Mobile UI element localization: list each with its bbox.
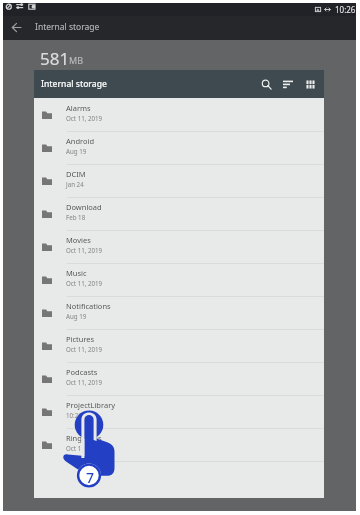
staticText: Oct 11, 2019 bbox=[66, 114, 103, 122]
staticText: Feb 18 bbox=[66, 213, 86, 221]
staticText: 7 bbox=[86, 468, 95, 487]
staticText: Podcasts bbox=[66, 367, 98, 377]
button[interactable]: Pictures bbox=[34, 329, 324, 362]
button[interactable]: Notifications bbox=[34, 296, 324, 329]
staticText: Oct 11, 2019 bbox=[66, 378, 103, 386]
staticText: Internal storage bbox=[35, 21, 100, 33]
staticText: Aug 19 bbox=[66, 147, 87, 155]
button[interactable]: Ringtones bbox=[34, 428, 324, 461]
staticText: Movies bbox=[66, 235, 91, 245]
button[interactable]: Android bbox=[34, 131, 324, 164]
button[interactable]: Download bbox=[34, 197, 324, 230]
staticText: 581 bbox=[40, 47, 70, 70]
staticText: Oct 11, 2019 bbox=[66, 279, 103, 287]
staticText: Oct 11, 2019 bbox=[66, 444, 103, 452]
button[interactable]: Podcasts bbox=[34, 362, 324, 395]
button[interactable]: Music bbox=[34, 263, 324, 296]
staticText: Music bbox=[66, 268, 87, 278]
staticText: Notifications bbox=[66, 301, 111, 311]
staticText: DCIM bbox=[66, 169, 86, 179]
staticText: MB bbox=[69, 54, 84, 66]
button[interactable]: DCIM bbox=[34, 164, 324, 197]
staticText: Oct 11, 2019 bbox=[66, 246, 103, 254]
staticText: Aug 19 bbox=[66, 312, 87, 320]
staticText: Oct 11, 2019 bbox=[66, 345, 103, 353]
staticText: Pictures bbox=[66, 334, 95, 344]
button[interactable]: Grid view bbox=[299, 73, 321, 95]
staticText: Alarms bbox=[66, 103, 91, 113]
staticText: ProjectLibrary bbox=[66, 400, 116, 410]
button[interactable]: Alarms bbox=[34, 98, 324, 131]
button[interactable]: Back bbox=[8, 19, 24, 35]
button[interactable]: ProjectLibrary bbox=[34, 395, 324, 428]
staticText: Jan 24 bbox=[66, 180, 84, 188]
button[interactable]: Search bbox=[255, 73, 277, 95]
button[interactable]: Movies bbox=[34, 230, 324, 263]
staticText: Download bbox=[66, 202, 102, 212]
staticText: Ringtones bbox=[66, 433, 102, 443]
staticText: Internal storage bbox=[41, 78, 107, 90]
button[interactable]: Sort bbox=[277, 73, 299, 95]
staticText: 10:26 bbox=[66, 411, 82, 419]
staticText: 10:26 bbox=[335, 4, 356, 15]
staticText: Android bbox=[66, 136, 95, 146]
